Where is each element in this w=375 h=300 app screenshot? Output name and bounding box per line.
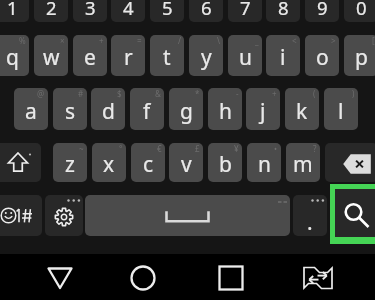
button[interactable]: ) [324, 88, 358, 130]
staticText: & [155, 88, 161, 99]
staticText: 2 [46, 0, 57, 20]
staticText: n [258, 150, 271, 179]
staticText: d [102, 97, 115, 126]
staticText: [ [372, 35, 375, 46]
button[interactable]: Backspace [325, 143, 375, 182]
staticText: ~ [79, 143, 84, 154]
staticText: r [124, 43, 133, 72]
button[interactable]: 0 [344, 0, 375, 22]
staticText: * [195, 88, 200, 99]
staticText: l [338, 97, 344, 126]
button[interactable]: Shift [0, 143, 41, 182]
staticText: _ [255, 35, 259, 46]
button[interactable]: 9 [305, 0, 339, 22]
staticText: £ [195, 143, 200, 154]
button[interactable]: ( [285, 88, 319, 130]
button[interactable]: Space [85, 195, 290, 236]
button[interactable]: * [169, 88, 203, 130]
button[interactable]: Back [30, 258, 90, 298]
button[interactable]: Switch keyboard [288, 258, 348, 298]
button[interactable]: / [150, 35, 184, 76]
button[interactable]: £ [169, 143, 203, 182]
staticText: 1 [7, 0, 18, 20]
staticText: 0 [356, 0, 367, 20]
staticText: a [25, 97, 37, 126]
button[interactable]: • [247, 143, 281, 182]
button[interactable]: Symbols and emoji [0, 195, 42, 236]
staticText: ¥ [234, 143, 239, 154]
staticText: + [99, 35, 104, 46]
button[interactable]: Recents [201, 258, 261, 298]
staticText: v [181, 150, 192, 179]
staticText: q [6, 43, 19, 72]
staticText: ? [313, 143, 317, 154]
staticText: g [180, 97, 193, 126]
button[interactable]: Home [113, 258, 173, 298]
button[interactable]: × [34, 35, 68, 76]
staticText: i [280, 43, 286, 72]
staticText: o [316, 43, 329, 72]
button[interactable]: 8 [266, 0, 300, 22]
button[interactable]: + [73, 35, 107, 76]
staticText: \ [217, 35, 220, 46]
staticText: 8 [278, 0, 289, 20]
staticText: > [331, 35, 336, 46]
staticText: k [296, 97, 308, 126]
staticText: 7 [240, 0, 251, 20]
button[interactable]: Search [330, 184, 375, 244]
button[interactable]: _ [228, 35, 262, 76]
staticText: h [219, 97, 232, 126]
staticText: m [293, 150, 313, 179]
staticText: t [163, 43, 171, 72]
staticText: j [260, 97, 266, 126]
staticText: b [219, 150, 232, 179]
staticText: . [307, 208, 313, 236]
staticText: c [143, 150, 154, 179]
button[interactable]: . [293, 195, 327, 236]
staticText: 5 [162, 0, 173, 20]
staticText: - [236, 88, 239, 99]
staticText: ) [352, 88, 355, 99]
staticText: + [272, 88, 277, 99]
button[interactable]: # [53, 88, 87, 130]
staticText: 3 [85, 0, 96, 20]
staticText: # [78, 88, 84, 99]
button[interactable]: € [131, 143, 165, 182]
staticText: ° [119, 143, 123, 154]
button[interactable]: < [266, 35, 300, 76]
button[interactable]: 6 [189, 0, 223, 22]
staticText: = [137, 35, 142, 46]
button[interactable]: - [208, 88, 242, 130]
button[interactable]: & [130, 88, 164, 130]
button[interactable]: 1 [0, 0, 29, 22]
button[interactable]: 2 [34, 0, 68, 22]
staticText: • [274, 143, 278, 154]
button[interactable]: Settings [45, 195, 83, 236]
button[interactable]: $ [91, 88, 125, 130]
button[interactable]: @ [14, 88, 48, 130]
button[interactable]: ~ [53, 143, 87, 182]
staticText: z [65, 150, 75, 179]
staticText: w [43, 43, 60, 72]
staticText: ( [313, 88, 316, 99]
staticText: p [355, 43, 368, 72]
button[interactable]: ? [286, 143, 320, 182]
button[interactable]: \ [189, 35, 223, 76]
button[interactable]: % [0, 35, 29, 76]
staticText: 6 [201, 0, 212, 20]
button[interactable]: [ [344, 35, 375, 76]
staticText: y [201, 43, 212, 72]
button[interactable]: ° [92, 143, 126, 182]
staticText: % [19, 35, 26, 46]
staticText: e [84, 43, 96, 72]
button[interactable]: ¥ [208, 143, 242, 182]
button[interactable]: 4 [111, 0, 145, 22]
button[interactable]: 3 [73, 0, 107, 22]
button[interactable]: 5 [150, 0, 184, 22]
button[interactable]: 7 [228, 0, 262, 22]
staticText: 9 [317, 0, 328, 20]
button[interactable]: > [305, 35, 339, 76]
button[interactable]: + [246, 88, 280, 130]
staticText: @ [37, 88, 45, 99]
button[interactable]: = [111, 35, 145, 76]
